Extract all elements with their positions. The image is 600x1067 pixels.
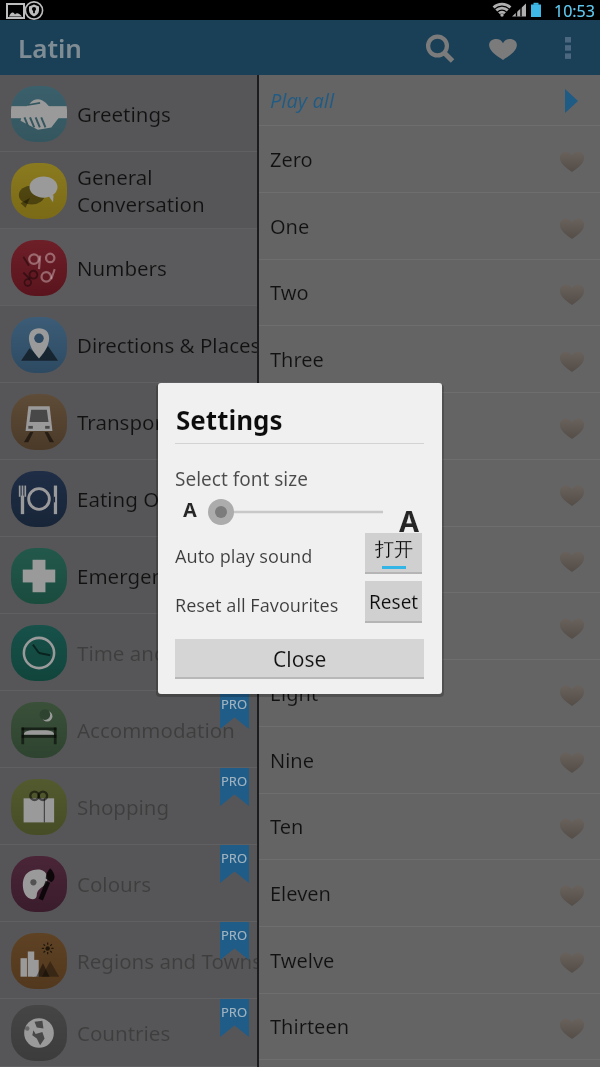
button[interactable]: Seven: [259, 593, 600, 660]
staticText: Settings: [176, 402, 283, 437]
staticText: PRO: [221, 695, 248, 713]
staticText: Reset all Favourites: [175, 593, 339, 618]
staticText: PRO: [221, 926, 248, 944]
staticText: Numbers: [77, 254, 257, 282]
button[interactable]: Two: [259, 259, 600, 326]
staticText: Eating Out: [77, 485, 257, 513]
button[interactable]: Five: [259, 460, 600, 527]
staticText: Five: [270, 480, 307, 507]
staticText: 10:53: [554, 0, 595, 20]
button[interactable]: More options: [546, 27, 590, 68]
staticText: Four: [270, 413, 314, 440]
button[interactable]: Emergency: [0, 537, 257, 614]
button[interactable]: Favourite: [548, 136, 596, 184]
staticText: Regions and Towns: [77, 947, 257, 975]
staticText: Eleven: [270, 880, 331, 907]
button[interactable]: Favourite: [548, 1003, 596, 1051]
staticText: Greetings: [77, 100, 257, 128]
staticText: Six: [270, 546, 297, 573]
staticText: Transport: [77, 408, 257, 436]
button[interactable]: Favourite: [548, 803, 596, 851]
staticText: Select font size: [175, 466, 308, 492]
staticText: One: [270, 213, 310, 240]
button[interactable]: Eating Out: [0, 460, 257, 537]
staticText: Emergency: [77, 562, 257, 590]
button[interactable]: Directions & Places: [0, 306, 257, 383]
staticText: PRO: [221, 772, 248, 790]
staticText: PRO: [221, 849, 248, 867]
button[interactable]: Favourite: [548, 470, 596, 518]
staticText: Three: [270, 346, 324, 373]
button[interactable]: Transport: [0, 383, 257, 460]
button[interactable]: Font size slider: [203, 495, 383, 527]
staticText: Close: [273, 645, 327, 674]
button[interactable]: Eight: [259, 660, 600, 727]
staticText: General Conversation: [77, 163, 257, 218]
button[interactable]: Shopping: [0, 768, 257, 845]
button[interactable]: Accommodation: [0, 691, 257, 768]
button[interactable]: Thirteen: [259, 993, 600, 1060]
button[interactable]: Favourite: [548, 203, 596, 251]
button[interactable]: Four: [259, 393, 600, 460]
staticText: Shopping: [77, 793, 257, 821]
button[interactable]: Greetings: [0, 75, 257, 152]
staticText: Colours: [77, 870, 257, 898]
staticText: Auto play sound: [175, 544, 313, 569]
button[interactable]: Favourite: [548, 670, 596, 718]
button[interactable]: General Conversation: [0, 152, 257, 229]
button[interactable]: Eleven: [259, 860, 600, 927]
staticText: Countries: [77, 1019, 257, 1047]
staticText: Ten: [270, 813, 304, 840]
button[interactable]: Close: [175, 639, 424, 679]
staticText: Twelve: [270, 947, 335, 974]
staticText: 打开: [375, 538, 413, 562]
staticText: PRO: [221, 1003, 248, 1021]
button[interactable]: One: [259, 193, 600, 260]
button[interactable]: Numbers: [0, 229, 257, 306]
button[interactable]: Favourite: [548, 269, 596, 317]
button[interactable]: Six: [259, 526, 600, 593]
staticText: Accommodation: [77, 716, 257, 744]
staticText: Two: [270, 279, 309, 306]
button[interactable]: Play all: [259, 75, 600, 126]
button[interactable]: Colours: [0, 845, 257, 922]
staticText: Play all: [270, 87, 335, 114]
staticText: Thirteen: [270, 1013, 350, 1040]
staticText: Reset: [369, 589, 419, 615]
button[interactable]: Nine: [259, 727, 600, 794]
button[interactable]: Regions and Towns: [0, 922, 257, 999]
button[interactable]: Zero: [259, 126, 600, 193]
staticText: Seven: [270, 613, 326, 640]
button[interactable]: Favourite: [548, 336, 596, 384]
button[interactable]: Favourite: [548, 870, 596, 918]
button[interactable]: Time and Date: [0, 614, 257, 691]
staticText: Nine: [270, 747, 314, 774]
staticText: Zero: [270, 146, 313, 173]
button[interactable]: Favourite: [548, 403, 596, 451]
button[interactable]: Three: [259, 326, 600, 393]
staticText: Eight: [270, 680, 319, 707]
staticText: Latin: [18, 30, 82, 65]
button[interactable]: Twelve: [259, 927, 600, 994]
button[interactable]: Favourite: [548, 737, 596, 785]
staticText: Time and Date: [77, 639, 257, 667]
button[interactable]: 打开: [365, 533, 422, 574]
button[interactable]: Reset: [365, 581, 422, 623]
button[interactable]: Ten: [259, 793, 600, 860]
button[interactable]: Countries: [0, 999, 257, 1067]
staticText: A: [399, 501, 420, 540]
button[interactable]: Favourite: [548, 603, 596, 651]
staticText: A: [183, 496, 197, 523]
button[interactable]: Favourite: [548, 536, 596, 584]
button[interactable]: Search: [411, 27, 469, 68]
button[interactable]: Favourite: [548, 937, 596, 985]
staticText: Directions & Places: [77, 331, 257, 359]
button[interactable]: Favourites: [474, 27, 532, 68]
